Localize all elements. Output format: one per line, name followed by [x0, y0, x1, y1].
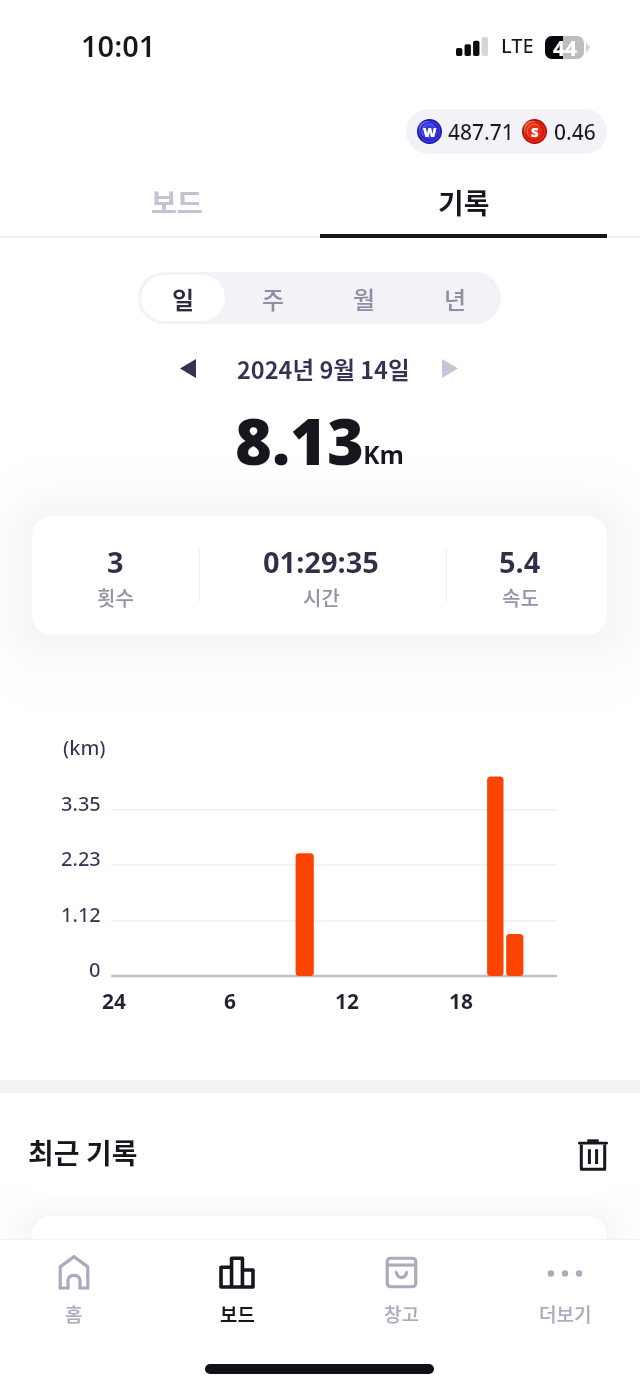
button[interactable]: Next day — [428, 346, 472, 390]
staticText: 더보기 — [539, 1300, 592, 1328]
staticText: 44 — [553, 34, 578, 57]
button[interactable]: 더보기 — [485, 1240, 640, 1337]
button[interactable]: 기록 — [320, 173, 607, 231]
staticText: 1.12 — [61, 901, 101, 928]
staticText: 0.46 — [554, 118, 596, 147]
staticText: 기록 — [438, 182, 490, 223]
staticText: 487.71 — [448, 118, 514, 147]
staticText: 5.4 — [499, 542, 541, 581]
staticText: 24 — [102, 987, 127, 1016]
staticText: Km — [363, 437, 404, 471]
staticText: S — [531, 123, 539, 141]
staticText: 18 — [449, 987, 474, 1016]
button[interactable]: 보드 — [157, 1240, 317, 1337]
staticText: 2.23 — [61, 845, 101, 872]
button[interactable]: 년 — [413, 275, 498, 321]
staticText: 12 — [335, 987, 360, 1016]
staticText: 창고 — [384, 1300, 419, 1328]
staticText: 3 — [107, 542, 124, 581]
button[interactable]: 창고 — [321, 1240, 481, 1337]
staticText: (km) — [63, 734, 106, 761]
button[interactable]: W — [406, 109, 607, 154]
staticText: 보드 — [220, 1300, 255, 1328]
button[interactable]: Previous day — [166, 346, 210, 390]
staticText: 01:29:35 — [263, 542, 379, 581]
staticText: 최근 기록 — [28, 1132, 138, 1173]
staticText: 보드 — [151, 182, 203, 223]
staticText: 년 — [444, 281, 467, 316]
staticText: W — [423, 123, 437, 141]
staticText: 3.35 — [61, 790, 101, 817]
staticText: 월 — [353, 281, 376, 316]
staticText: LTE — [501, 32, 534, 59]
button[interactable]: 주 — [231, 275, 316, 321]
staticText: 홈 — [65, 1300, 83, 1328]
staticText: 시간 — [303, 583, 340, 612]
button[interactable]: 일 — [141, 275, 225, 321]
staticText: 주 — [262, 281, 285, 316]
button[interactable]: 홈 — [0, 1240, 154, 1337]
staticText: 8.13 — [235, 398, 364, 484]
staticText: 속도 — [502, 583, 539, 612]
staticText: 10:01 — [81, 26, 156, 65]
button[interactable]: 월 — [322, 275, 407, 321]
staticText: 일 — [172, 281, 195, 316]
staticText: 2024년 9월 14일 — [237, 352, 410, 386]
button[interactable]: 보드 — [33, 173, 320, 231]
button[interactable]: Delete records — [568, 1129, 618, 1179]
staticText: 횟수 — [97, 583, 134, 612]
staticText: 0 — [89, 956, 101, 983]
staticText: 6 — [224, 987, 237, 1016]
